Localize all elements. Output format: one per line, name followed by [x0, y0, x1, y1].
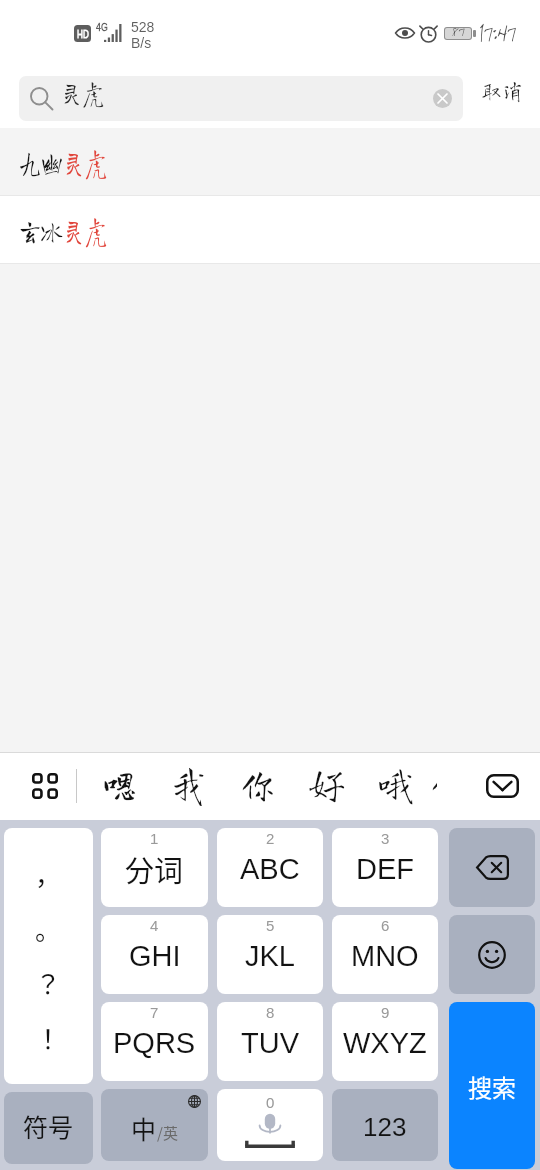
staticText: 符号 [23, 1108, 74, 1144]
button[interactable]: Emoji [449, 915, 535, 994]
button[interactable]: 中 [101, 1089, 208, 1161]
staticText: 搜索 [468, 1069, 516, 1104]
staticText: DEF [356, 853, 414, 885]
staticText: TUV [241, 1027, 299, 1059]
button[interactable]: 好 [292, 752, 361, 820]
button[interactable]: Hide keyboard [437, 752, 540, 820]
staticText: 好 [310, 763, 344, 804]
button[interactable]: 5 [217, 915, 323, 994]
button[interactable]: 2 [217, 828, 323, 907]
other: Voice input [240, 1111, 300, 1151]
other: Emoji [477, 940, 507, 970]
staticText: /英 [157, 1122, 178, 1144]
button[interactable]: 6 [332, 915, 438, 994]
staticText: 7 [150, 1004, 159, 1021]
staticText: 我 [172, 763, 206, 804]
button[interactable]: Input methods [0, 752, 76, 820]
other: Backspace [476, 855, 509, 880]
button[interactable]: 1 [101, 828, 208, 907]
button[interactable]: 你 [223, 752, 292, 820]
staticText: ， [35, 855, 62, 893]
staticText: 玄冰 [19, 215, 63, 246]
staticText: HD [77, 28, 89, 40]
button[interactable]: 灵虎 [19, 76, 463, 121]
staticText: 灵虎 [63, 215, 107, 246]
button[interactable]: ， [4, 828, 93, 1084]
staticText: 0 [266, 1094, 275, 1111]
button[interactable]: 8 [217, 1002, 323, 1081]
staticText: 17:47 [479, 21, 517, 43]
button[interactable]: 3 [332, 828, 438, 907]
staticText: JKL [245, 940, 295, 972]
staticText: 。 [35, 910, 62, 948]
button[interactable]: 玄冰 [0, 196, 540, 264]
button[interactable]: 7 [101, 1002, 208, 1081]
button[interactable]: 九幽 [0, 128, 540, 196]
staticText: 9 [381, 1004, 390, 1021]
staticText: 4 [150, 917, 159, 934]
staticText: 你 [431, 763, 437, 804]
staticText: 灵虎 [63, 147, 107, 178]
staticText: GHI [129, 940, 181, 972]
other: Eye comfort [395, 26, 415, 40]
staticText: ABC [240, 853, 300, 885]
staticText: 87 [452, 27, 465, 36]
staticText: 取消 [481, 79, 523, 102]
staticText: PQRS [113, 1027, 196, 1059]
staticText: 你 [241, 763, 275, 804]
staticText: 123 [363, 1112, 407, 1141]
button[interactable]: 0 [217, 1089, 323, 1161]
button[interactable]: 4 [101, 915, 208, 994]
staticText: 2 [266, 830, 275, 847]
staticText: WXYZ [343, 1027, 427, 1059]
staticText: 4G [96, 21, 108, 33]
staticText: 中 [131, 1110, 157, 1146]
button[interactable]: 搜索 [449, 1002, 535, 1169]
button[interactable]: 嗯 [85, 752, 154, 820]
other: Alarm [419, 24, 438, 43]
button[interactable]: 9 [332, 1002, 438, 1081]
button[interactable]: Backspace [449, 828, 535, 907]
button[interactable]: 符号 [4, 1092, 93, 1164]
button[interactable]: Clear text [433, 89, 452, 108]
button[interactable]: 哦 [361, 752, 430, 820]
staticText: B/s [131, 35, 152, 51]
staticText: MNO [351, 940, 419, 972]
staticText: 3 [381, 830, 390, 847]
button[interactable]: 123 [332, 1089, 438, 1161]
staticText: 8 [266, 1004, 275, 1021]
staticText: 嗯 [103, 763, 137, 804]
staticText: 6 [381, 917, 390, 934]
button[interactable]: 我 [154, 752, 223, 820]
staticText: 九幽 [19, 147, 63, 178]
staticText: 1 [150, 830, 159, 847]
staticText: 528 [131, 19, 155, 35]
staticText: 灵虎 [61, 79, 104, 106]
staticText: 分词 [125, 848, 184, 890]
staticText: 5 [266, 917, 275, 934]
staticText: ？ [35, 964, 62, 1002]
staticText: 哦 [379, 763, 413, 804]
staticText: ！ [35, 1019, 62, 1057]
button[interactable]: 你 [430, 752, 437, 820]
button[interactable]: 取消 [463, 68, 540, 128]
